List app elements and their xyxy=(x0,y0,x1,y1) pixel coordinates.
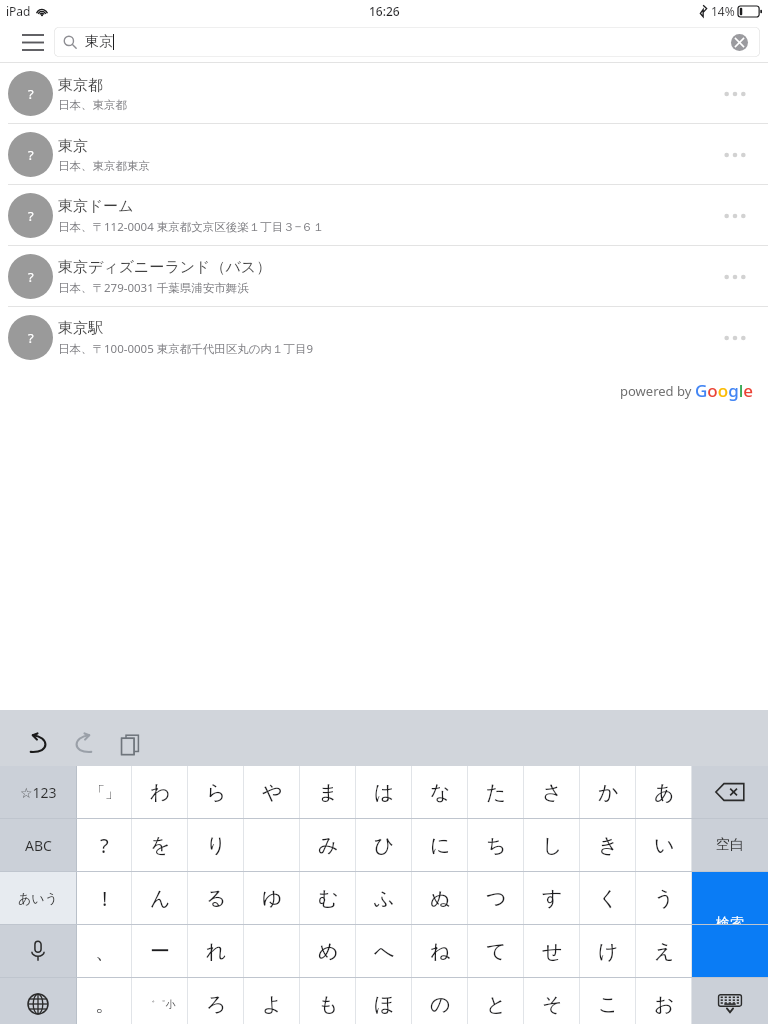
staticText: め xyxy=(318,939,339,964)
button[interactable]: を xyxy=(132,819,188,871)
button[interactable]: Paste xyxy=(112,726,148,762)
button[interactable]: お xyxy=(636,978,692,1024)
button[interactable]: ら xyxy=(188,766,244,818)
button[interactable]: わ xyxy=(132,766,188,818)
button[interactable]: Redo xyxy=(66,726,102,762)
button[interactable]: く xyxy=(580,872,636,924)
staticText: か xyxy=(598,780,619,805)
button[interactable]: め xyxy=(300,925,356,977)
button[interactable]: い xyxy=(636,819,692,871)
button[interactable]: れ xyxy=(188,925,244,977)
button[interactable]: ろ xyxy=(188,978,244,1024)
staticText: わ xyxy=(150,780,171,805)
button[interactable]: More options xyxy=(720,201,750,231)
button[interactable]: More options xyxy=(720,262,750,292)
staticText: も xyxy=(318,992,339,1017)
button[interactable]: し xyxy=(524,819,580,871)
button[interactable]: み xyxy=(300,819,356,871)
button[interactable]: も xyxy=(300,978,356,1024)
button[interactable]: 、 xyxy=(77,925,132,977)
button[interactable]: ー xyxy=(132,925,188,977)
staticText: ? xyxy=(100,832,109,859)
staticText: ほ xyxy=(374,992,395,1017)
staticText: の xyxy=(430,992,451,1017)
button[interactable]: Hide keyboard xyxy=(692,978,768,1024)
button[interactable]: More options xyxy=(720,79,750,109)
button[interactable]: ? xyxy=(0,124,768,185)
button[interactable]: More options xyxy=(720,140,750,170)
button[interactable]: よ xyxy=(244,978,300,1024)
button[interactable]: ま xyxy=(300,766,356,818)
button[interactable]: む xyxy=(300,872,356,924)
button[interactable]: て xyxy=(468,925,524,977)
staticText: さ xyxy=(542,780,563,805)
button[interactable]: ほ xyxy=(356,978,412,1024)
button[interactable]: あいう xyxy=(0,872,76,924)
button[interactable]: ? xyxy=(0,246,768,307)
button[interactable]: 「」 xyxy=(77,766,132,818)
button[interactable]: か xyxy=(580,766,636,818)
button[interactable]: ね xyxy=(412,925,468,977)
button[interactable]: こ xyxy=(580,978,636,1024)
button[interactable]: Change keyboard xyxy=(0,978,76,1024)
staticText: ふ xyxy=(374,886,395,911)
button[interactable]: Dictate xyxy=(0,925,76,977)
button[interactable]: 空白 xyxy=(692,819,768,871)
button[interactable]: な xyxy=(412,766,468,818)
button[interactable]: の xyxy=(412,978,468,1024)
button[interactable]: さ xyxy=(524,766,580,818)
button[interactable]: や xyxy=(244,766,300,818)
button[interactable]: つ xyxy=(468,872,524,924)
button[interactable]: Delete xyxy=(692,766,768,818)
button[interactable]: そ xyxy=(524,978,580,1024)
staticText: な xyxy=(430,780,451,805)
button[interactable]: は xyxy=(356,766,412,818)
button[interactable]: う xyxy=(636,872,692,924)
button[interactable]: ABC xyxy=(0,819,76,871)
button[interactable]: り xyxy=(188,819,244,871)
button[interactable]: 検索 xyxy=(692,872,768,924)
button[interactable]: ち xyxy=(468,819,524,871)
button[interactable]: ? xyxy=(0,63,768,124)
staticText: ! xyxy=(102,885,108,912)
button[interactable]: ! xyxy=(77,872,132,924)
button[interactable]: 東京 xyxy=(54,27,760,57)
button[interactable]: ゛゜小 xyxy=(132,978,188,1024)
button[interactable]: More options xyxy=(720,323,750,353)
button[interactable]: ? xyxy=(77,819,132,871)
button[interactable]: ? xyxy=(0,307,768,368)
staticText: つ xyxy=(486,886,507,911)
button[interactable]: と xyxy=(468,978,524,1024)
button[interactable]: け xyxy=(580,925,636,977)
button[interactable]: ん xyxy=(132,872,188,924)
button[interactable]: き xyxy=(580,819,636,871)
button[interactable]: Undo xyxy=(20,726,56,762)
staticText: 。 xyxy=(95,992,115,1017)
button[interactable]: ☆123 xyxy=(0,766,76,818)
staticText: け xyxy=(598,939,619,964)
button[interactable]: ぬ xyxy=(412,872,468,924)
staticText: ? xyxy=(28,207,34,225)
button[interactable]: へ xyxy=(356,925,412,977)
button[interactable]: ふ xyxy=(356,872,412,924)
button[interactable]: あ xyxy=(636,766,692,818)
button[interactable]: Clear xyxy=(728,31,750,53)
button[interactable]: た xyxy=(468,766,524,818)
button[interactable]: ひ xyxy=(356,819,412,871)
staticText: る xyxy=(206,886,227,911)
staticText: 14% xyxy=(711,3,735,19)
button[interactable]: せ xyxy=(524,925,580,977)
button[interactable]: る xyxy=(188,872,244,924)
button[interactable]: ? xyxy=(0,185,768,246)
staticText: iPad xyxy=(6,3,31,19)
staticText: あいう xyxy=(18,890,58,906)
button[interactable]: す xyxy=(524,872,580,924)
button[interactable] xyxy=(244,925,300,977)
button[interactable]: 。 xyxy=(77,978,132,1024)
button[interactable] xyxy=(244,819,300,871)
button[interactable]: に xyxy=(412,819,468,871)
button[interactable]: え xyxy=(636,925,692,977)
button[interactable]: Menu xyxy=(16,25,50,59)
button[interactable]: ゆ xyxy=(244,872,300,924)
